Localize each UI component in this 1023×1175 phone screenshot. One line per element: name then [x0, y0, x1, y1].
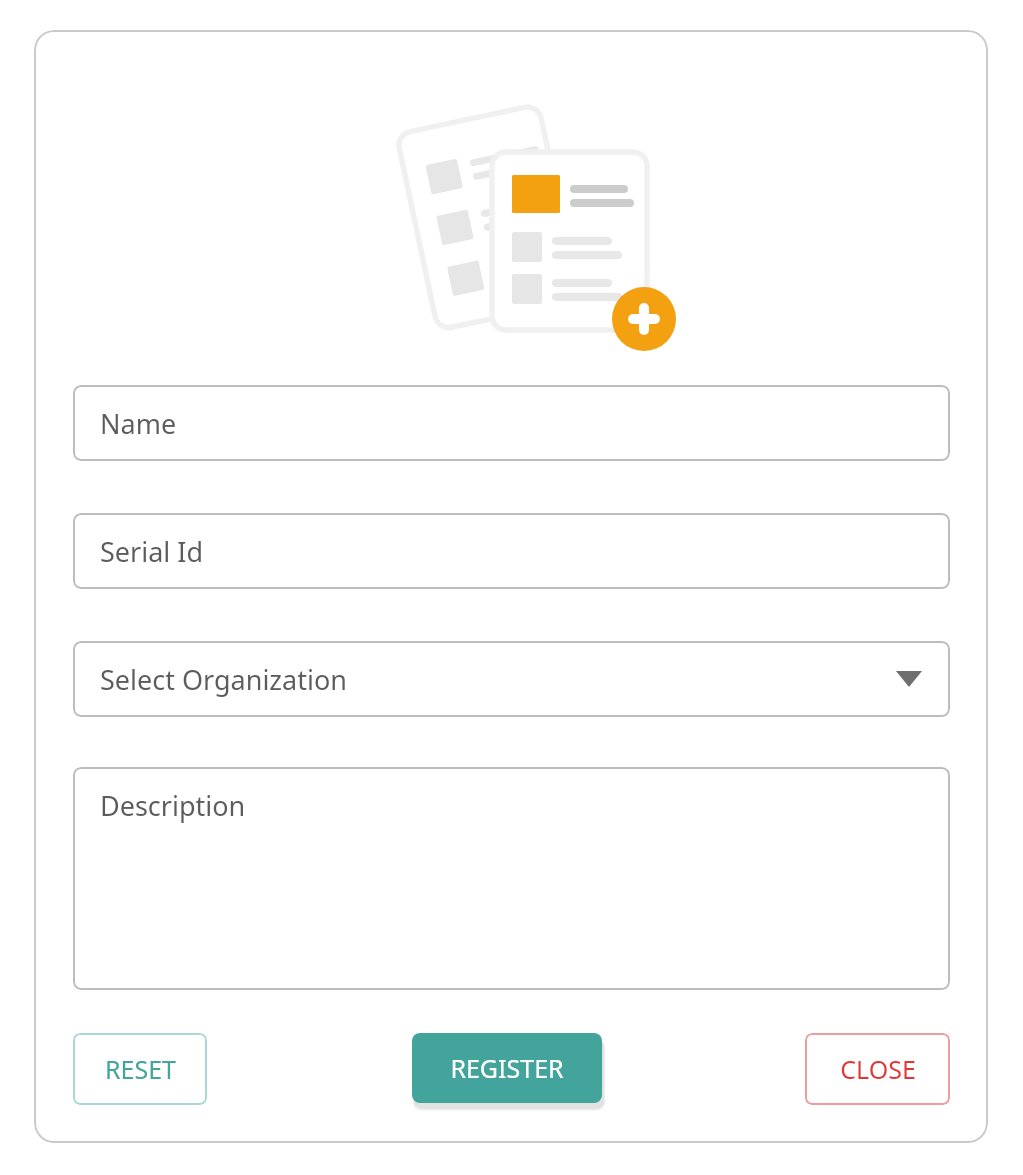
staticText: RESET	[105, 1052, 176, 1086]
button[interactable]: CLOSE	[805, 1033, 950, 1105]
staticText: Description	[100, 787, 246, 824]
button[interactable]: RESET	[73, 1033, 207, 1105]
staticText: REGISTER	[450, 1051, 564, 1085]
button[interactable]: Name	[73, 385, 950, 461]
staticText: Select Organization	[100, 661, 347, 698]
button[interactable]: REGISTER	[412, 1033, 602, 1103]
button[interactable]: Serial Id	[73, 513, 950, 589]
staticText: Serial Id	[100, 533, 204, 570]
button[interactable]: Select Organization dropdown	[73, 641, 950, 717]
button[interactable]: Description	[73, 767, 950, 990]
staticText: Name	[100, 405, 177, 442]
staticText: CLOSE	[840, 1052, 916, 1086]
